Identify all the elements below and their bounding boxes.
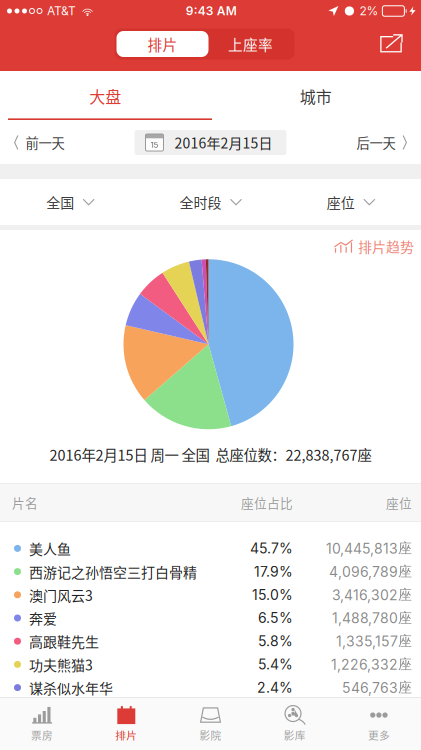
staticText: 谋杀似水年华 — [29, 677, 113, 698]
staticText: 票房 — [31, 727, 53, 742]
button[interactable]: Share — [369, 26, 421, 66]
staticText: 排片 — [115, 727, 137, 742]
staticText: 546,763座 — [342, 679, 412, 696]
button[interactable]: 全时段 — [140, 179, 281, 225]
staticText: 城市 — [300, 84, 332, 108]
staticText: 影库 — [284, 727, 306, 742]
staticText: 2016年2月15日 周一 全国 总座位数：22,838,767座 — [49, 444, 371, 465]
staticText: 片名 — [12, 493, 38, 512]
staticText: 美人鱼 — [29, 538, 71, 559]
staticText: 45.7% — [250, 540, 293, 557]
button[interactable]: 全国 — [0, 179, 140, 225]
staticText: 大盘 — [89, 84, 121, 108]
staticText: 座位 — [386, 493, 412, 512]
staticText: 上座率 — [228, 33, 273, 55]
staticText: 功夫熊猫3 — [29, 654, 93, 675]
button[interactable]: 城市 — [210, 71, 421, 121]
staticText: 排片趋势 — [358, 236, 414, 256]
button[interactable]: 高跟鞋先生 — [0, 630, 421, 653]
button[interactable]: 奔爱 — [0, 606, 421, 630]
button[interactable]: 票房 — [0, 698, 84, 750]
staticText: 座位占比 — [241, 493, 293, 512]
staticText: 17.9% — [254, 563, 293, 580]
staticText: 1,335,157座 — [336, 632, 412, 650]
staticText: 西游记之孙悟空三打白骨精 — [29, 561, 197, 582]
staticText: 排片 — [147, 33, 177, 55]
staticText: 2.4% — [257, 679, 293, 696]
button[interactable]: 更多 — [337, 698, 421, 750]
button[interactable]: 功夫熊猫3 — [0, 653, 421, 676]
staticText: 9:43 AM — [186, 4, 237, 18]
button[interactable]: 影院 — [168, 698, 253, 750]
staticText: 1,226,332座 — [331, 656, 412, 673]
button[interactable]: 座位 — [281, 179, 421, 225]
staticText: 影院 — [199, 727, 221, 742]
button[interactable]: 西游记之孙悟空三打白骨精 — [0, 560, 421, 583]
button[interactable]: 15 — [134, 130, 286, 155]
staticText: 前一天 — [25, 133, 64, 152]
staticText: 澳门风云3 — [29, 585, 93, 605]
staticText: 6.5% — [258, 609, 293, 626]
staticText: 座位 — [327, 192, 355, 212]
button[interactable]: 谋杀似水年华 — [0, 676, 421, 699]
button[interactable]: 排片趋势 — [334, 233, 421, 259]
staticText: 后一天 — [356, 133, 395, 152]
button[interactable]: 排片 — [84, 698, 168, 750]
staticText: 高跟鞋先生 — [29, 631, 99, 651]
staticText: 更多 — [368, 727, 390, 742]
staticText: 奔爱 — [29, 608, 57, 628]
button[interactable]: 美人鱼 — [0, 537, 421, 560]
staticText: 2% — [359, 4, 378, 18]
staticText: 15.0% — [252, 586, 293, 603]
button[interactable]: 上座率 — [208, 31, 292, 57]
staticText: 全国 — [46, 192, 74, 212]
staticText: 1,488,780座 — [332, 609, 412, 627]
staticText: 2016年2月15日 — [174, 132, 272, 153]
staticText: AT&T — [47, 4, 76, 18]
button[interactable]: 大盘 — [0, 71, 210, 121]
button[interactable]: 排片 — [116, 31, 208, 57]
button[interactable]: 前一天 — [0, 121, 64, 164]
staticText: 4,096,789座 — [329, 563, 412, 580]
staticText: 10,445,813座 — [326, 540, 412, 557]
staticText: 3,416,302座 — [332, 586, 412, 604]
button[interactable]: 影库 — [253, 698, 337, 750]
button[interactable]: 后一天 — [356, 121, 421, 164]
staticText: 5.8% — [258, 633, 293, 650]
staticText: 5.4% — [258, 656, 293, 673]
staticText: 15 — [150, 140, 158, 150]
staticText: 全时段 — [179, 192, 221, 212]
button[interactable]: 澳门风云3 — [0, 583, 421, 606]
